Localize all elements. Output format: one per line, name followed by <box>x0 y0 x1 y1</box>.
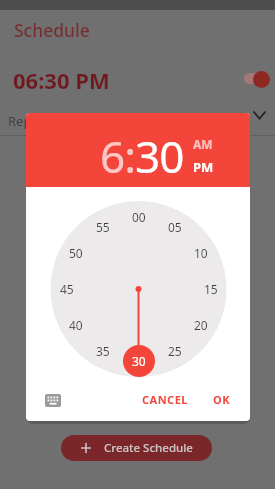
button[interactable]: OK <box>204 387 240 411</box>
staticText: 05 <box>168 219 182 235</box>
staticText: 30 <box>135 126 184 186</box>
button[interactable] <box>253 110 266 120</box>
staticText: 15 <box>204 281 218 297</box>
staticText: 00 <box>132 209 146 225</box>
staticText: 40 <box>69 317 83 333</box>
staticText: 25 <box>168 343 182 359</box>
staticText: Everyday <box>55 112 111 130</box>
button[interactable] <box>41 389 65 411</box>
button[interactable]: AM <box>193 136 213 152</box>
staticText: 50 <box>69 245 83 261</box>
button[interactable]: Create Schedule <box>61 435 212 461</box>
staticText: CANCEL <box>142 392 188 407</box>
button[interactable]: CANCEL <box>134 387 196 411</box>
staticText: 30 <box>132 353 146 369</box>
staticText: Repeat <box>8 112 51 130</box>
staticText: 55 <box>96 219 110 235</box>
button[interactable]: PM <box>193 158 214 176</box>
staticText: Schedule <box>14 18 90 42</box>
staticText: 06:30 PM <box>13 65 110 95</box>
staticText: Create Schedule <box>104 440 193 456</box>
staticText: 6: <box>100 126 135 186</box>
button[interactable] <box>244 73 266 84</box>
staticText: 35 <box>96 343 110 359</box>
staticText: 45 <box>60 281 74 297</box>
staticText: 10 <box>194 245 208 261</box>
staticText: 20 <box>194 317 208 333</box>
staticText: OK <box>213 392 231 407</box>
